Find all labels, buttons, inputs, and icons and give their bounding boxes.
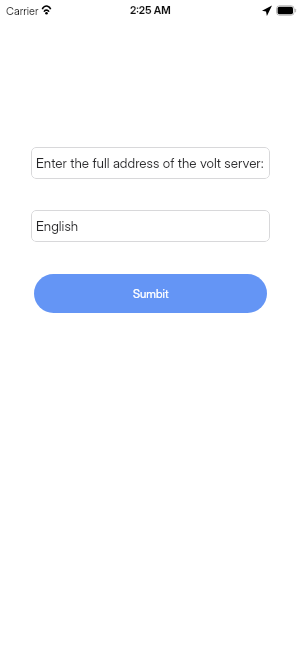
staticText: Carrier	[6, 4, 39, 17]
staticText: English	[36, 218, 79, 234]
button[interactable]: Sumbit	[34, 274, 267, 313]
staticText: 2:25 AM	[130, 4, 171, 17]
button[interactable]: Enter the full address of the volt serve…	[31, 147, 270, 179]
staticText: Enter the full address of the volt serve…	[36, 155, 264, 171]
button[interactable]: English	[31, 210, 270, 242]
other: Location	[262, 5, 272, 16]
staticText: Sumbit	[133, 287, 169, 301]
